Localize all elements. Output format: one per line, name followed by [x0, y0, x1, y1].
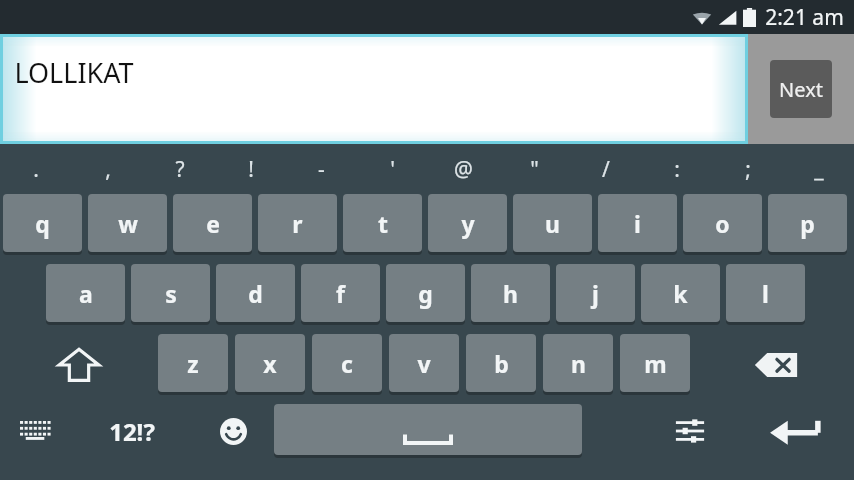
staticText: g	[418, 278, 433, 309]
staticText: w	[118, 208, 138, 239]
button[interactable]: a	[46, 264, 125, 325]
staticText: p	[800, 208, 815, 239]
staticText: ?	[175, 155, 185, 184]
staticText: /	[602, 155, 610, 184]
staticText: Next	[779, 76, 823, 103]
staticText: t	[378, 208, 388, 239]
staticText: ,	[105, 155, 111, 184]
staticText: "	[530, 155, 539, 184]
staticText: l	[762, 278, 769, 309]
button[interactable]: l	[726, 264, 805, 325]
button[interactable]: .	[0, 150, 72, 188]
button[interactable]: f	[301, 264, 380, 325]
staticText: m	[644, 348, 667, 379]
button[interactable]: z	[158, 334, 228, 395]
button[interactable]: LOLLIKAT	[0, 34, 748, 144]
staticText: 12!?	[109, 415, 155, 448]
staticText: n	[571, 348, 586, 379]
button[interactable]: Shift	[0, 334, 158, 395]
button[interactable]: Backspace	[698, 334, 854, 395]
staticText: j	[592, 278, 599, 309]
button[interactable]: "	[499, 150, 570, 188]
button[interactable]: Emoji	[192, 402, 274, 460]
button[interactable]: '	[357, 150, 428, 188]
staticText: '	[390, 155, 395, 184]
button[interactable]: b	[466, 334, 536, 395]
button[interactable]: o	[683, 194, 762, 255]
button[interactable]: ?	[144, 150, 215, 188]
button[interactable]: v	[389, 334, 459, 395]
button[interactable]: g	[386, 264, 465, 325]
staticText: ;	[745, 155, 751, 184]
staticText: x	[263, 348, 277, 379]
button[interactable]: Space	[274, 404, 582, 458]
staticText: z	[187, 348, 199, 379]
staticText: y	[461, 208, 475, 239]
button[interactable]: i	[598, 194, 677, 255]
staticText: k	[673, 278, 688, 309]
staticText: e	[206, 208, 220, 239]
button[interactable]: /	[570, 150, 641, 188]
button[interactable]: ,	[72, 150, 144, 188]
button[interactable]: x	[235, 334, 305, 395]
button[interactable]: Settings	[644, 402, 736, 460]
button[interactable]: !	[215, 150, 286, 188]
button[interactable]: q	[3, 194, 82, 255]
button[interactable]: Switch keyboard	[0, 402, 72, 460]
staticText: v	[417, 348, 431, 379]
button[interactable]: p	[768, 194, 847, 255]
button[interactable]: ;	[712, 150, 783, 188]
staticText: .	[33, 155, 39, 184]
button[interactable]: m	[620, 334, 690, 395]
button[interactable]: j	[556, 264, 635, 325]
button[interactable]: s	[131, 264, 210, 325]
staticText: LOLLIKAT	[14, 54, 134, 91]
button[interactable]: :	[641, 150, 712, 188]
button[interactable]: r	[258, 194, 337, 255]
button[interactable]: d	[216, 264, 295, 325]
staticText: d	[248, 278, 263, 309]
staticText: i	[634, 208, 641, 239]
button[interactable]: h	[471, 264, 550, 325]
staticText: !	[248, 155, 254, 184]
button[interactable]: n	[543, 334, 613, 395]
button[interactable]: k	[641, 264, 720, 325]
button[interactable]: _	[783, 150, 854, 188]
staticText: b	[494, 348, 509, 379]
staticText: _	[814, 155, 824, 184]
button[interactable]: y	[428, 194, 507, 255]
staticText: u	[545, 208, 560, 239]
staticText: :	[674, 155, 680, 184]
button[interactable]: w	[88, 194, 167, 255]
staticText: @	[454, 155, 473, 184]
staticText: q	[35, 208, 50, 239]
staticText: 2:21 am	[765, 3, 844, 32]
staticText: h	[503, 278, 518, 309]
staticText: -	[318, 155, 325, 184]
staticText: c	[341, 348, 353, 379]
button[interactable]: Enter	[736, 402, 854, 460]
button[interactable]: -	[286, 150, 357, 188]
button[interactable]: t	[343, 194, 422, 255]
button[interactable]: u	[513, 194, 592, 255]
button[interactable]: @	[428, 150, 499, 188]
button[interactable]: c	[312, 334, 382, 395]
button[interactable]: 12!?	[72, 402, 192, 460]
staticText: r	[292, 208, 303, 239]
staticText: s	[165, 278, 177, 309]
button[interactable]: e	[173, 194, 252, 255]
staticText: f	[336, 278, 345, 309]
staticText: a	[79, 278, 93, 309]
staticText: o	[715, 208, 730, 239]
button[interactable]: Next	[770, 60, 832, 118]
